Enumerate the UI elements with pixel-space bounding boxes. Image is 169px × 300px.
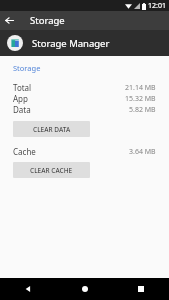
staticText: Total	[13, 82, 32, 93]
staticText: 15.32 MB	[125, 94, 156, 104]
staticText: CLEAR CACHE	[30, 166, 73, 175]
button[interactable]: CLEAR CACHE	[13, 162, 90, 178]
staticText: CLEAR DATA	[33, 125, 71, 134]
staticText: App	[13, 93, 28, 104]
button[interactable]: CLEAR DATA	[13, 121, 90, 137]
staticText: Storage	[13, 63, 41, 73]
staticText: 12:01	[148, 1, 166, 11]
staticText: Data	[13, 104, 31, 115]
staticText: Cache	[13, 146, 36, 157]
button[interactable]: Back	[11, 278, 45, 300]
button[interactable]: Recent apps	[124, 278, 158, 300]
button[interactable]: Storage Manager	[0, 30, 169, 56]
staticText: 21.14 MB	[125, 83, 156, 93]
staticText: 3.64 MB	[129, 147, 156, 157]
staticText: Storage	[30, 14, 65, 27]
button[interactable]: Navigate up	[0, 11, 19, 30]
button[interactable]: Home	[68, 278, 102, 300]
staticText: Storage Manager	[32, 37, 110, 50]
staticText: 5.82 MB	[129, 105, 156, 115]
